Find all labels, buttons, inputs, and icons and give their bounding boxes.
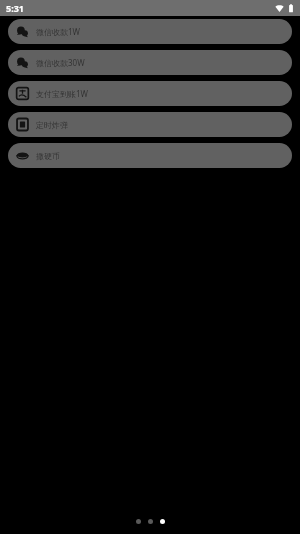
button[interactable] [136,519,141,524]
button[interactable]: WeChat receive 1W [8,19,292,44]
button[interactable]: WeChat receive 30W [8,50,292,75]
other: WeChat receive 30W [16,56,29,69]
staticText: 微信收款1W [36,26,81,37]
other: WeChat receive 1W [16,25,29,38]
other: Scatter coins [16,149,29,162]
button[interactable] [148,519,153,524]
other: Alipay received 1W [16,87,29,100]
staticText: 定时炸弹 [36,120,68,130]
button[interactable]: Scatter coins [8,143,292,168]
staticText: 撒硬币 [36,151,60,161]
button[interactable] [160,519,165,524]
button[interactable]: Timer bomb [8,112,292,137]
other: Timer bomb [16,118,29,131]
staticText: 微信收款30W [36,57,85,68]
button[interactable]: Alipay received 1W [8,81,292,106]
staticText: 5:31 [6,2,24,14]
staticText: 支付宝到账1W [36,88,89,99]
